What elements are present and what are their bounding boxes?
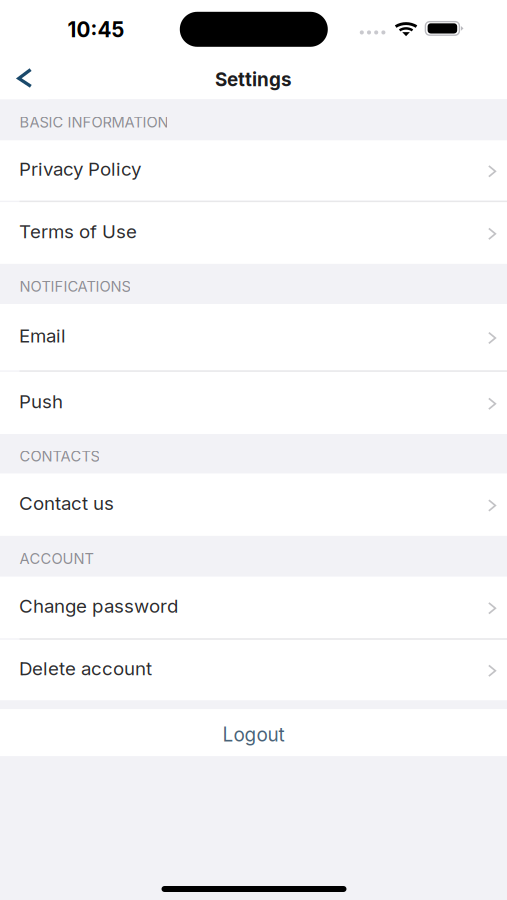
staticText: NOTIFICATIONS <box>19 277 130 295</box>
button[interactable]: Push <box>0 372 507 434</box>
button[interactable]: Back <box>0 56 48 100</box>
button[interactable]: Terms of Use <box>0 202 507 264</box>
staticText: Delete account <box>19 657 152 680</box>
button[interactable]: Logout <box>0 709 507 756</box>
button[interactable]: Email <box>0 304 507 370</box>
staticText: ACCOUNT <box>19 550 93 567</box>
staticText: CONTACTS <box>19 447 99 465</box>
button[interactable]: Privacy Policy <box>0 140 507 201</box>
button[interactable]: Contact us <box>0 473 507 536</box>
staticText: Privacy Policy <box>19 158 141 180</box>
staticText: Contact us <box>19 492 114 514</box>
staticText: Terms of Use <box>19 220 137 243</box>
staticText: Change password <box>19 595 178 617</box>
staticText: Settings <box>215 68 292 91</box>
button[interactable]: Change password <box>0 577 507 638</box>
staticText: 10:45 <box>67 17 124 42</box>
staticText: Email <box>19 324 66 347</box>
staticText: Push <box>19 390 63 413</box>
staticText: Logout <box>222 723 284 746</box>
staticText: BASIC INFORMATION <box>19 113 168 131</box>
button[interactable]: Delete account <box>0 640 507 700</box>
